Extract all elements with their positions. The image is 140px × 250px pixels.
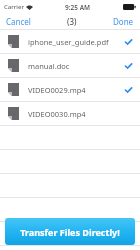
button[interactable]: VIDEO0030.mp4 [0,102,140,125]
button[interactable]: Transfer Files Directly! [5,218,135,245]
staticText: manual.doc [28,61,125,71]
staticText: Cancel [6,16,31,27]
button[interactable]: Done [111,14,136,29]
button[interactable]: manual.doc [0,54,140,77]
staticText: VIDEO0030.mp4 [28,109,134,119]
staticText: Transfer Files Directly! [20,226,120,238]
button[interactable]: iphone_user_guide.pdf [0,30,140,53]
staticText: Done [113,16,134,27]
button[interactable]: VIDEO0029.mp4 [0,78,140,101]
other: Selected [125,63,132,69]
button[interactable]: Cancel [4,14,33,29]
staticText: 9:25 AM [65,3,91,12]
other: Selected [125,87,132,93]
staticText: Carrier [4,3,24,11]
staticText: (3) [67,16,77,27]
other: Selected [125,39,132,45]
staticText: iphone_user_guide.pdf [28,37,125,47]
staticText: VIDEO0029.mp4 [28,85,125,95]
